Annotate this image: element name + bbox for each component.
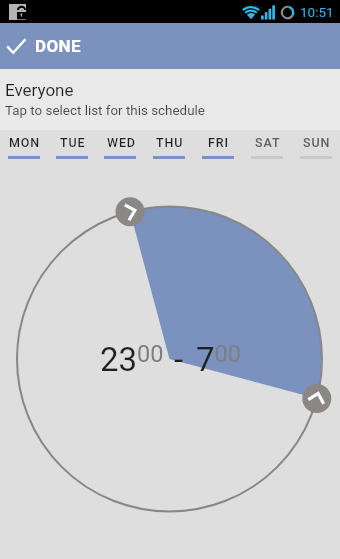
staticText: SAT: [255, 135, 281, 150]
staticText: SUN: [303, 135, 331, 150]
button[interactable]: SAT: [242, 130, 291, 165]
staticText: DONE: [35, 36, 81, 56]
staticText: TUE: [60, 135, 86, 150]
button[interactable]: DONE: [0, 23, 340, 69]
staticText: Everyone: [5, 80, 74, 100]
staticText: FRI: [208, 135, 229, 150]
button[interactable]: THU: [144, 130, 193, 165]
button[interactable]: MON: [0, 130, 48, 165]
staticText: WED: [107, 135, 136, 150]
button[interactable]: FRI: [193, 130, 242, 165]
button[interactable]: WED: [96, 130, 144, 165]
staticText: Tap to select list for this schedule: [5, 103, 205, 119]
button[interactable]: SUN: [291, 130, 340, 165]
other: Screen lock notification: [9, 4, 26, 20]
staticText: MON: [9, 135, 41, 150]
button[interactable]: Everyone: [0, 69, 340, 130]
staticText: 2300 - 700: [100, 340, 241, 379]
staticText: 10:51: [300, 4, 334, 20]
button[interactable]: TUE: [48, 130, 96, 165]
staticText: THU: [156, 135, 184, 150]
